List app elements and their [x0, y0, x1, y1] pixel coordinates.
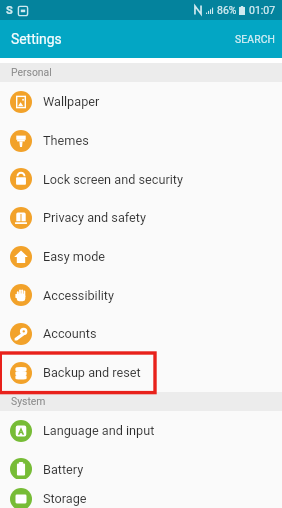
staticText: Themes: [43, 133, 89, 148]
staticText: 86%: [217, 4, 237, 16]
staticText: Backup and reset: [43, 365, 141, 380]
button[interactable]: Lock screen and security: [0, 160, 282, 198]
button[interactable]: Language and input: [0, 411, 282, 450]
staticText: Privacy and safety: [43, 210, 146, 225]
staticText: Accounts: [43, 326, 97, 341]
button[interactable]: Easy mode: [0, 237, 282, 276]
button[interactable]: Wallpaper: [0, 82, 282, 121]
staticText: Language and input: [43, 423, 155, 438]
button[interactable]: Themes: [0, 121, 282, 160]
button[interactable]: Backup and reset: [0, 353, 282, 392]
button[interactable]: Privacy and safety: [0, 198, 282, 237]
staticText: Wallpaper: [43, 94, 100, 109]
staticText: Easy mode: [43, 249, 106, 264]
staticText: Battery: [43, 462, 84, 477]
staticText: SEARCH: [235, 33, 276, 45]
staticText: S: [6, 4, 13, 17]
staticText: System: [11, 395, 46, 407]
button[interactable]: Battery: [0, 450, 282, 488]
staticText: Settings: [11, 31, 62, 47]
staticText: Personal: [11, 66, 52, 78]
staticText: 01:07: [249, 4, 276, 16]
staticText: Storage: [43, 491, 87, 506]
staticText: Lock screen and security: [43, 172, 183, 187]
button[interactable]: Accounts: [0, 314, 282, 353]
button[interactable]: Storage: [0, 479, 282, 508]
button[interactable]: SEARCH: [227, 24, 282, 54]
staticText: Accessibility: [43, 288, 115, 303]
button[interactable]: Accessibility: [0, 276, 282, 314]
